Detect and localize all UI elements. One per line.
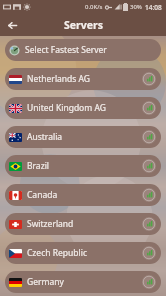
staticText: Czech Republic <box>27 247 87 259</box>
button[interactable]: Signal strength <box>142 217 156 231</box>
staticText: 14:08 <box>145 3 162 12</box>
button[interactable]: Switzerland <box>5 213 161 235</box>
button[interactable]: Select Fastest Server <box>5 39 161 61</box>
staticText: Australia <box>27 131 63 143</box>
button[interactable]: Signal strength <box>142 159 156 173</box>
staticText: United Kingdom AG <box>27 102 106 114</box>
staticText: Germany <box>27 276 64 288</box>
staticText: Netherlands AG <box>27 73 91 85</box>
button[interactable]: Canada <box>5 184 161 206</box>
staticText: Servers <box>64 18 103 32</box>
button[interactable]: Signal strength <box>142 101 156 115</box>
button[interactable]: Czech Republic <box>5 242 161 264</box>
button[interactable]: Back <box>3 16 21 34</box>
staticText: 30% <box>130 3 142 11</box>
button[interactable]: United Kingdom AG <box>5 97 161 119</box>
button[interactable]: Germany <box>5 271 161 293</box>
button[interactable]: Signal strength <box>142 130 156 144</box>
staticText: Select Fastest Server <box>25 44 107 56</box>
staticText: Canada <box>27 189 58 201</box>
button[interactable]: Signal strength <box>142 188 156 202</box>
button[interactable]: Netherlands AG <box>5 68 161 90</box>
button[interactable]: Signal strength <box>142 246 156 260</box>
staticText: 0.0K/s <box>85 3 103 11</box>
button[interactable]: Signal strength <box>142 275 156 289</box>
button[interactable]: Signal strength <box>142 72 156 86</box>
button[interactable]: Australia <box>5 126 161 148</box>
staticText: Switzerland <box>27 218 74 230</box>
staticText: Brazil <box>27 160 50 172</box>
button[interactable]: Brazil <box>5 155 161 177</box>
